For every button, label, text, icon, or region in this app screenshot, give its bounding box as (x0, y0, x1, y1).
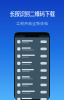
button[interactable]: List item (15, 67, 49, 74)
button[interactable]: List item (15, 53, 49, 59)
button[interactable]: List item (15, 60, 49, 67)
button[interactable]: List item (15, 82, 49, 88)
button[interactable]: List item (15, 46, 49, 52)
staticText: 立刻开启全新体验 (16, 20, 48, 26)
button[interactable]: List item (15, 96, 49, 100)
button[interactable]: List item (15, 74, 49, 81)
button[interactable]: List item (15, 38, 49, 45)
button[interactable]: List item (15, 89, 49, 95)
staticText: 长按识别二维码下载 (9, 9, 54, 17)
